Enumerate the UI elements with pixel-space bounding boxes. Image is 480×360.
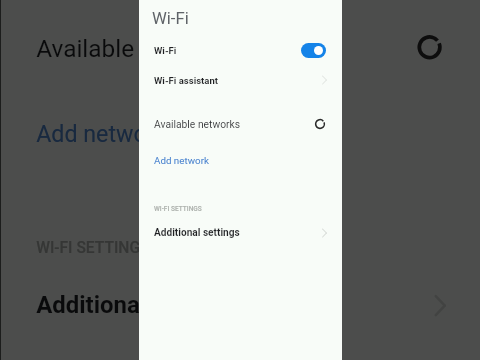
button[interactable]: Additional settings bbox=[1, 282, 480, 329]
staticText: Add network bbox=[36, 121, 167, 147]
other: Open bbox=[427, 294, 451, 317]
button[interactable]: Additional settings bbox=[139, 223, 342, 243]
button[interactable]: Wi-Fi toggle bbox=[301, 43, 326, 58]
staticText: Wi-Fi bbox=[152, 9, 189, 29]
staticText: Wi-Fi bbox=[154, 45, 177, 56]
button[interactable]: Add network bbox=[139, 150, 342, 170]
staticText: WI-FI SETTINGS bbox=[154, 205, 202, 213]
other: Open bbox=[319, 228, 329, 238]
button[interactable]: Add network bbox=[1, 109, 480, 156]
staticText: Additional settings bbox=[154, 227, 240, 239]
button[interactable]: Wi-Fi assistant bbox=[139, 70, 342, 90]
staticText: Add network bbox=[154, 155, 209, 166]
staticText: Available networks bbox=[36, 33, 242, 61]
staticText: WI-FI SETTINGS bbox=[36, 239, 150, 258]
staticText: Wi-Fi assistant bbox=[154, 75, 219, 86]
other: Open bbox=[319, 75, 329, 85]
staticText: Available networks bbox=[154, 118, 241, 130]
button[interactable]: Wi-Fi bbox=[139, 40, 342, 60]
staticText: Additional settings bbox=[36, 291, 240, 320]
